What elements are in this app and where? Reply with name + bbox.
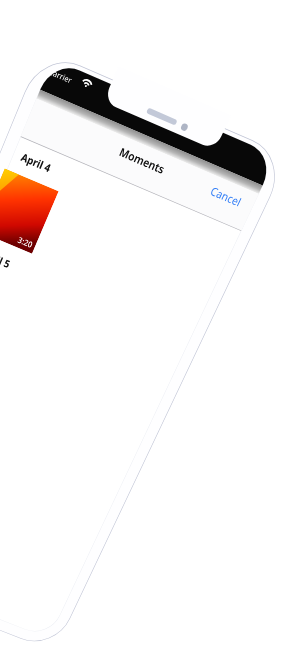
button[interactable]: Moments photo picker (0, 0, 300, 649)
